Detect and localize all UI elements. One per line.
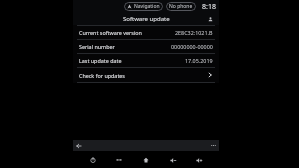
button[interactable]: Check for updates bbox=[73, 68, 219, 82]
button[interactable]: Power bbox=[86, 153, 100, 167]
staticText: 2E8C32:1021.B bbox=[175, 29, 213, 36]
staticText: 00000000-00000 bbox=[171, 43, 213, 50]
button[interactable]: More options bbox=[208, 140, 219, 151]
button[interactable]: Navigation bbox=[124, 2, 163, 11]
button[interactable]: Volume up bbox=[192, 153, 206, 167]
staticText: Current software version bbox=[79, 29, 142, 36]
staticText: 17.05.2019 bbox=[185, 57, 213, 64]
button[interactable]: No phone bbox=[166, 2, 196, 11]
button[interactable]: Serial number bbox=[73, 40, 219, 53]
staticText: Software update bbox=[123, 15, 170, 23]
button[interactable]: Profile bbox=[205, 14, 215, 24]
button[interactable]: Apps bbox=[112, 153, 126, 167]
button[interactable]: Volume down bbox=[166, 153, 180, 167]
staticText: Last update date bbox=[79, 57, 122, 64]
staticText: 8:18 bbox=[202, 2, 216, 12]
button[interactable]: Last update date bbox=[73, 54, 219, 67]
staticText: No phone bbox=[169, 3, 193, 10]
staticText: Navigation bbox=[134, 3, 160, 10]
staticText: Check for updates bbox=[79, 72, 125, 79]
button[interactable]: Back bbox=[73, 140, 84, 151]
button[interactable]: Current software version bbox=[73, 26, 219, 39]
staticText: Serial number bbox=[79, 43, 115, 50]
button[interactable]: Home bbox=[139, 153, 153, 167]
